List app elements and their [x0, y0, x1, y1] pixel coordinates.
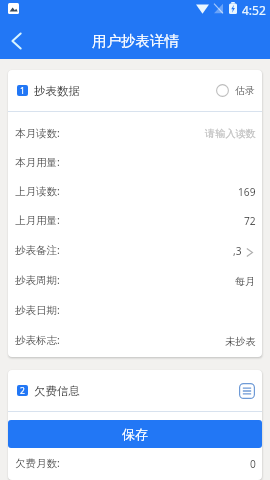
- staticText: 抄表周期:: [15, 273, 60, 287]
- button[interactable]: 抄表标志:: [8, 325, 262, 355]
- button[interactable]: 保存: [8, 420, 262, 448]
- staticText: 72: [244, 214, 256, 228]
- staticText: 本月读数:: [15, 126, 60, 140]
- button[interactable]: 估录: [216, 84, 255, 97]
- button[interactable]: 欠费月数:: [8, 448, 262, 478]
- button[interactable]: 本月用量:: [8, 147, 262, 176]
- button[interactable]: Bill list: [239, 383, 255, 399]
- button[interactable]: 上月用量:: [8, 205, 262, 235]
- staticText: 欠费信息: [34, 384, 80, 398]
- staticText: 保存: [122, 426, 148, 442]
- staticText: 4:52: [242, 2, 266, 18]
- staticText: 上月用量:: [15, 213, 60, 227]
- staticText: 未抄表: [225, 335, 256, 348]
- staticText: 用户抄表详情: [92, 32, 179, 50]
- staticText: 2: [20, 385, 25, 396]
- staticText: 上月读数:: [15, 184, 60, 198]
- button[interactable]: 抄表备注:: [8, 235, 262, 265]
- staticText: 169: [238, 185, 256, 199]
- staticText: 每月: [235, 275, 256, 288]
- button[interactable]: 抄表周期:: [8, 265, 262, 295]
- button[interactable]: Back: [0, 22, 32, 59]
- staticText: 欠费月数:: [15, 456, 60, 470]
- staticText: 抄表备注:: [15, 243, 60, 257]
- staticText: 抄表日期:: [15, 303, 60, 317]
- staticText: 请输入读数: [205, 127, 256, 140]
- button[interactable]: 抄表日期:: [8, 295, 262, 325]
- staticText: 估录: [235, 84, 255, 97]
- staticText: 抄表标志:: [15, 333, 60, 347]
- staticText: 本月用量:: [15, 155, 60, 169]
- staticText: ,3: [233, 244, 242, 258]
- staticText: 抄表数据: [34, 84, 80, 98]
- button[interactable]: 本月读数:: [8, 118, 262, 147]
- staticText: 1: [20, 85, 25, 96]
- staticText: 0: [250, 457, 256, 471]
- button[interactable]: 上月读数:: [8, 176, 262, 205]
